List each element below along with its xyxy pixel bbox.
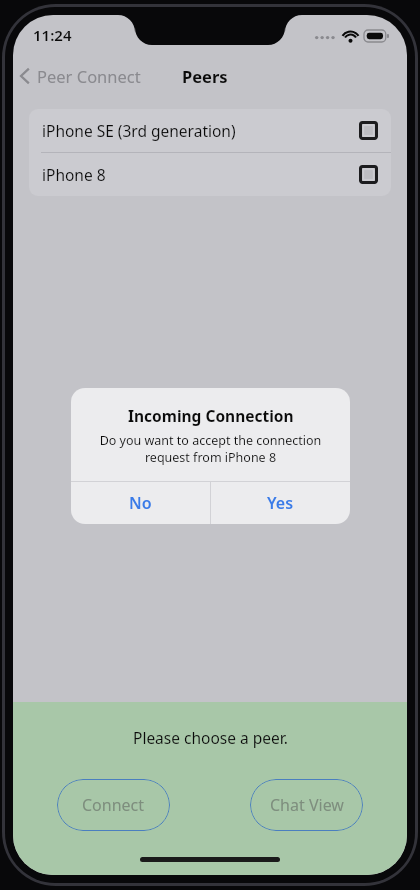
staticText: Peers: [182, 65, 228, 87]
staticText: iPhone SE (3rd generation): [42, 120, 359, 141]
other: Select peer iPhone SE (3rd generation): [359, 121, 378, 140]
staticText: Chat View: [270, 794, 344, 816]
button[interactable]: iPhone 8: [29, 153, 391, 196]
staticText: Yes: [267, 492, 294, 514]
other: Select peer iPhone 8: [359, 165, 378, 184]
staticText: Please choose a peer.: [133, 727, 288, 748]
staticText: Peer Connect: [37, 65, 141, 87]
staticText: Incoming Connection: [128, 405, 294, 426]
button[interactable]: Peer Connect: [13, 61, 151, 91]
staticText: Connect: [82, 794, 145, 816]
button[interactable]: Chat View: [250, 779, 363, 831]
button[interactable]: Yes: [211, 482, 350, 524]
button[interactable]: iPhone SE (3rd generation): [29, 109, 391, 152]
staticText: 11:24: [33, 25, 72, 45]
button[interactable]: Connect: [57, 779, 170, 831]
staticText: Do you want to accept the connection req…: [85, 432, 336, 465]
staticText: No: [129, 492, 152, 514]
staticText: iPhone 8: [42, 164, 359, 185]
button[interactable]: No: [71, 482, 210, 524]
